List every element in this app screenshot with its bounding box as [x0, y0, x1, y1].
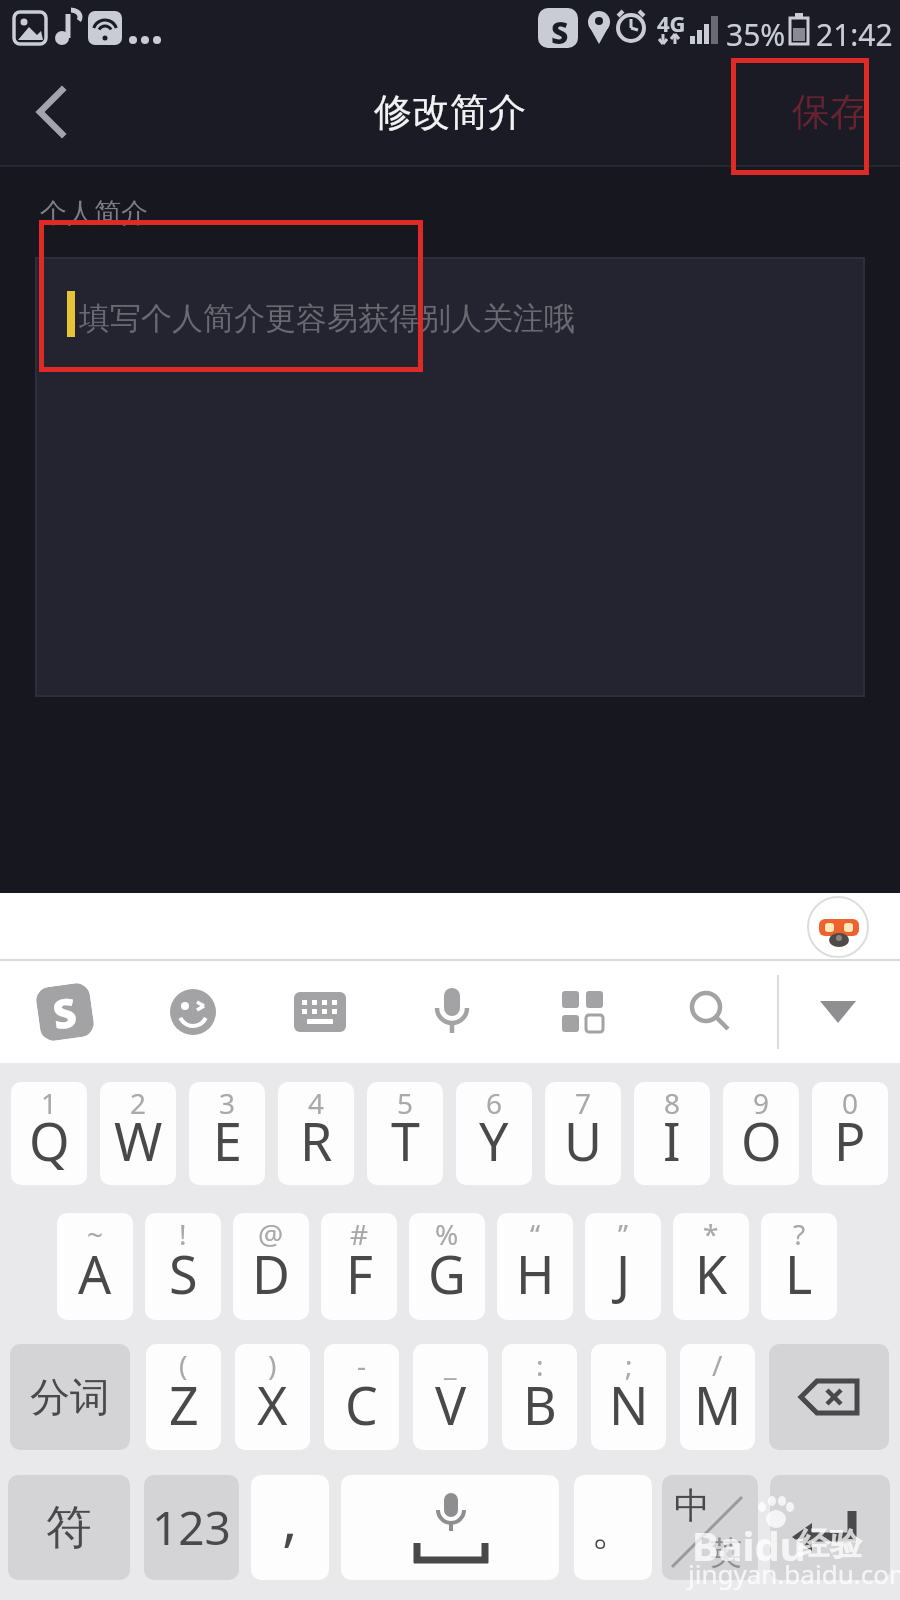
button[interactable]: 9 — [723, 1082, 799, 1185]
staticText: Q — [29, 1105, 70, 1176]
button[interactable] — [294, 992, 346, 1032]
button[interactable]: : — [502, 1344, 577, 1450]
staticText: T — [391, 1105, 420, 1176]
button[interactable]: 5 — [367, 1082, 443, 1185]
button[interactable]: 6 — [456, 1082, 532, 1185]
button[interactable]: 123 — [144, 1475, 239, 1580]
staticText: B — [523, 1369, 557, 1440]
staticText: 英 — [710, 1533, 742, 1573]
button[interactable]: 4 — [278, 1082, 354, 1185]
button[interactable]: _ — [413, 1344, 488, 1450]
staticText: G — [428, 1238, 466, 1309]
button[interactable]: 3 — [189, 1082, 265, 1185]
staticText: “ — [530, 1215, 541, 1253]
staticText: _ — [444, 1346, 457, 1384]
staticText: ( — [179, 1346, 188, 1384]
button[interactable]: ” — [585, 1213, 661, 1320]
button[interactable]: ; — [591, 1344, 666, 1450]
staticText: A — [78, 1238, 112, 1309]
staticText: 4G — [657, 8, 686, 38]
button[interactable]: ) — [235, 1344, 310, 1450]
button[interactable]: “ — [497, 1213, 573, 1320]
button[interactable] — [688, 989, 734, 1035]
button[interactable] — [769, 1344, 889, 1450]
staticText: H — [516, 1238, 555, 1309]
staticText: I — [663, 1105, 681, 1176]
staticText: 21:42 — [816, 14, 893, 55]
staticText: , — [282, 1478, 298, 1557]
staticText: C — [345, 1369, 378, 1440]
staticText: M — [694, 1369, 742, 1440]
button[interactable]: 1 — [11, 1082, 87, 1185]
button[interactable]: ? — [761, 1213, 837, 1320]
staticText: P — [834, 1105, 866, 1176]
button[interactable]: 保存 — [780, 82, 880, 142]
button[interactable] — [430, 988, 474, 1038]
button[interactable]: 中 — [662, 1475, 758, 1580]
button[interactable] — [341, 1475, 559, 1580]
button[interactable]: 分词 — [10, 1344, 130, 1450]
staticText: ~ — [87, 1215, 104, 1253]
button[interactable]: / — [680, 1344, 755, 1450]
staticText: : — [536, 1346, 544, 1384]
button[interactable]: S — [34, 981, 95, 1042]
staticText: S — [551, 12, 569, 53]
staticText: ) — [268, 1346, 277, 1384]
staticText: 6 — [486, 1084, 503, 1122]
button[interactable] — [20, 85, 80, 145]
staticText: ; — [625, 1346, 633, 1384]
staticText: ? — [793, 1215, 806, 1253]
button[interactable]: % — [409, 1213, 485, 1320]
staticText: 分词 — [30, 1372, 110, 1422]
staticText: 9 — [753, 1084, 770, 1122]
staticText: W — [114, 1105, 163, 1176]
staticText: 5 — [397, 1084, 414, 1122]
button[interactable]: * — [673, 1213, 749, 1320]
staticText: F — [346, 1238, 373, 1309]
button[interactable]: # — [321, 1213, 397, 1320]
staticText: U — [564, 1105, 603, 1176]
button[interactable] — [814, 995, 862, 1029]
staticText: S — [49, 984, 81, 1040]
staticText: 修改简介 — [374, 88, 526, 136]
button[interactable]: 0 — [812, 1082, 888, 1185]
button[interactable]: - — [324, 1344, 399, 1450]
button[interactable]: 填写个人简介更容易获得别人关注哦 — [35, 257, 865, 697]
staticText: @ — [258, 1215, 284, 1253]
button[interactable]: 7 — [545, 1082, 621, 1185]
staticText: L — [785, 1238, 813, 1309]
button[interactable] — [562, 991, 604, 1033]
staticText: 符 — [46, 1499, 92, 1557]
staticText: * — [703, 1215, 719, 1253]
staticText: 35% — [726, 14, 786, 55]
button[interactable]: 2 — [100, 1082, 176, 1185]
button[interactable]: 8 — [634, 1082, 710, 1185]
button[interactable]: ~ — [57, 1213, 133, 1320]
button[interactable]: @ — [233, 1213, 309, 1320]
staticText: # — [350, 1215, 369, 1253]
staticText: ” — [618, 1215, 629, 1253]
staticText: 1 — [41, 1084, 58, 1122]
button[interactable]: ! — [145, 1213, 221, 1320]
button[interactable]: 。 — [574, 1475, 652, 1580]
button[interactable] — [770, 1475, 890, 1580]
button[interactable]: ( — [146, 1344, 221, 1450]
staticText: S — [169, 1238, 198, 1309]
staticText: Z — [169, 1369, 199, 1440]
staticText: 3 — [219, 1084, 236, 1122]
staticText: jingyan.baidu.com — [688, 1556, 900, 1591]
staticText: 。 — [591, 1502, 635, 1557]
staticText: Y — [479, 1105, 509, 1176]
staticText: 0 — [842, 1084, 859, 1122]
button[interactable]: , — [251, 1475, 329, 1580]
button[interactable]: 符 — [8, 1475, 130, 1580]
staticText: 保存 — [792, 88, 868, 136]
staticText: Baidu — [692, 1518, 806, 1572]
staticText: J — [616, 1238, 631, 1309]
staticText: - — [357, 1346, 367, 1384]
staticText: X — [257, 1369, 288, 1440]
staticText: 123 — [152, 1496, 231, 1559]
staticText: 8 — [664, 1084, 681, 1122]
button[interactable] — [170, 989, 216, 1035]
staticText: 经验 — [798, 1524, 862, 1564]
